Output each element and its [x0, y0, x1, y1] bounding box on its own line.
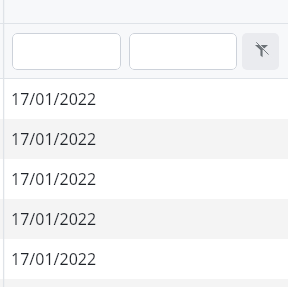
staticText: 17/01/2022	[11, 168, 97, 190]
button[interactable]: 17/01/2022	[0, 79, 288, 119]
button[interactable]: 17/01/2022	[0, 159, 288, 199]
staticText: 17/01/2022	[11, 248, 97, 270]
staticText: 17/01/2022	[11, 88, 97, 110]
button[interactable]	[12, 33, 121, 70]
staticText: 17/01/2022	[11, 128, 97, 150]
button[interactable]	[129, 33, 237, 70]
button[interactable]: Clear filters	[242, 33, 279, 70]
button[interactable]: 17/01/2022	[0, 199, 288, 239]
button[interactable]: 17/01/2022	[0, 119, 288, 159]
button[interactable]: 17/01/2022	[0, 239, 288, 279]
staticText: 17/01/2022	[11, 208, 97, 230]
